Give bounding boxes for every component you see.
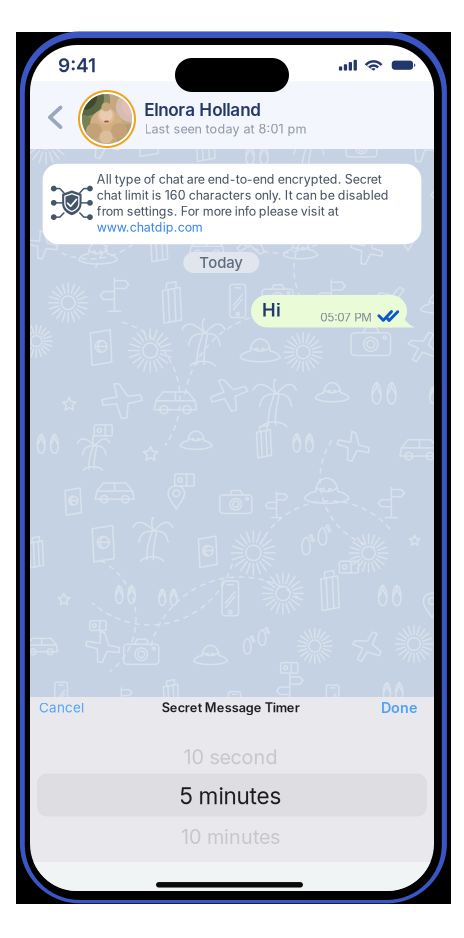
staticText: www.chatdip.com [97, 220, 203, 235]
button[interactable]: 5 minutes [36, 774, 426, 817]
button[interactable]: Done [327, 691, 417, 725]
staticText: Last seen today at 8:01 pm [144, 121, 306, 137]
staticText: 10 minutes [181, 825, 280, 849]
staticText: 9:41 [58, 54, 96, 77]
staticText: from settings. For more info please visi… [97, 204, 339, 219]
staticText: 5 minutes [180, 782, 282, 810]
staticText: Secret Message Timer [162, 700, 300, 715]
staticText: 10 second [184, 745, 278, 769]
staticText: Cancel [39, 700, 84, 716]
button[interactable]: Cancel [39, 691, 129, 725]
staticText: 05:07 PM [320, 310, 372, 324]
button[interactable]: 10 minutes [36, 817, 426, 857]
button[interactable]: Elnora Holland [142, 97, 372, 141]
button[interactable]: www.chatdip.com [97, 218, 217, 236]
staticText: Today [199, 253, 243, 271]
staticText: Hi [262, 299, 281, 321]
staticText: All type of chat are end-to-end encrypte… [97, 172, 382, 187]
staticText: Done [381, 699, 417, 716]
staticText: Elnora Holland [144, 99, 261, 120]
staticText: chat limit is 160 characters only. It ca… [97, 188, 389, 203]
button[interactable]: Profile photo [78, 90, 136, 148]
button[interactable]: 10 second [36, 737, 426, 777]
button[interactable]: Back [40, 95, 70, 139]
